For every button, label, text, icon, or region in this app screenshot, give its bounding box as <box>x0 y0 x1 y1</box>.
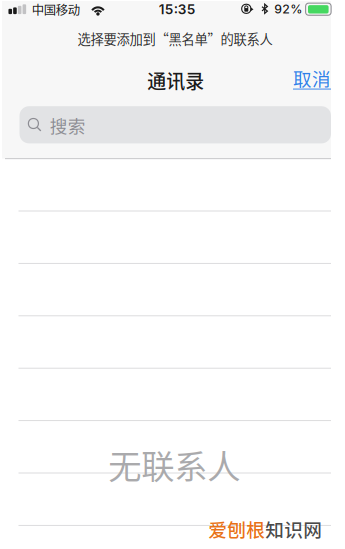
staticText: 爱刨根 <box>208 515 265 542</box>
button[interactable]: 搜索 <box>19 106 331 143</box>
staticText: 通讯录 <box>147 66 204 94</box>
staticText: 取消 <box>293 65 331 92</box>
staticText: 15:35 <box>159 1 196 17</box>
staticText: 选择要添加到“黑名单”的联系人 <box>77 29 272 48</box>
staticText: 中国移动 <box>32 0 80 18</box>
staticText: 知识网 <box>265 515 322 542</box>
staticText: 92% <box>274 2 302 16</box>
staticText: 搜索 <box>50 112 86 138</box>
staticText: 无联系人 <box>108 440 240 489</box>
button[interactable]: 取消 <box>290 60 334 97</box>
